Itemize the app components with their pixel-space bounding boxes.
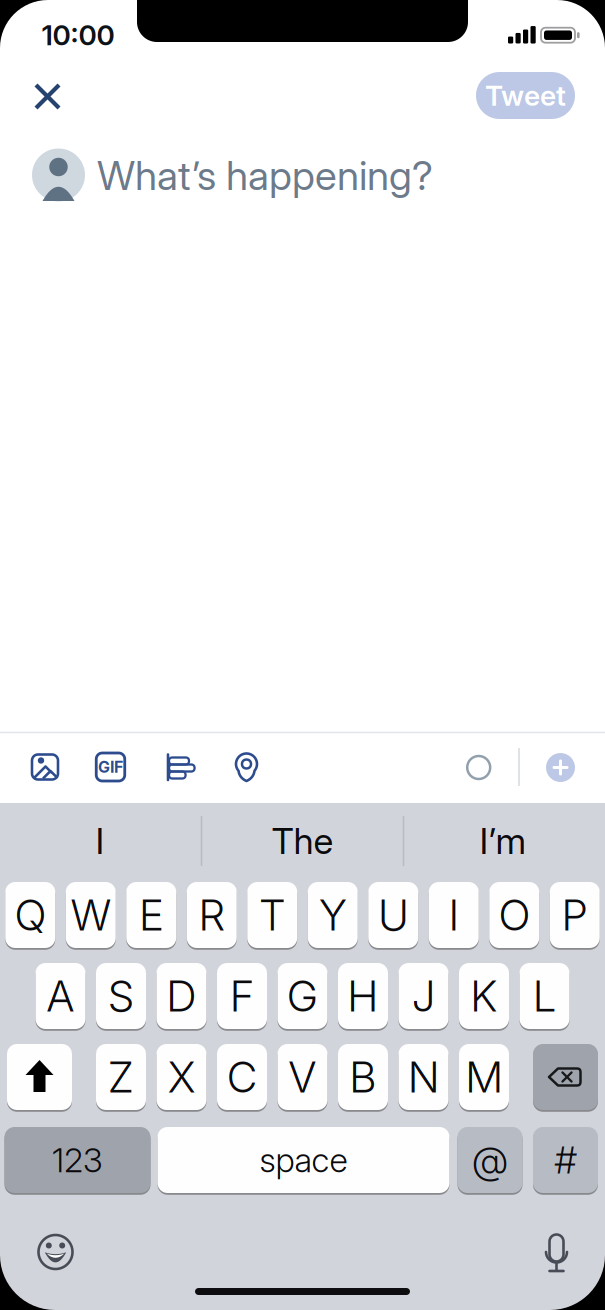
button[interactable]: L — [519, 962, 569, 1030]
staticText: space — [259, 1140, 347, 1180]
staticText: Tweet — [485, 79, 566, 112]
staticText: B — [349, 1052, 377, 1102]
staticText: Q — [14, 890, 46, 940]
staticText: L — [532, 971, 556, 1021]
staticText: Y — [319, 890, 347, 940]
button[interactable]: S — [96, 962, 146, 1030]
button[interactable]: I — [5, 806, 195, 876]
staticText: U — [378, 890, 409, 940]
button[interactable]: E — [126, 881, 176, 949]
button[interactable]: Y — [308, 881, 358, 949]
button[interactable]: I’m — [408, 806, 598, 876]
button[interactable]: space — [157, 1126, 449, 1194]
staticText: C — [226, 1052, 257, 1102]
button[interactable]: K — [459, 962, 509, 1030]
button[interactable]: Add GIF — [88, 745, 132, 789]
button[interactable]: Add another Tweet — [538, 745, 582, 789]
button[interactable]: P — [550, 881, 600, 949]
button[interactable]: X — [156, 1043, 206, 1111]
staticText: E — [139, 890, 164, 940]
staticText: N — [407, 1052, 439, 1102]
staticText: Z — [107, 1052, 134, 1102]
staticText: F — [229, 971, 254, 1021]
staticText: P — [561, 890, 588, 940]
button[interactable]: T — [247, 881, 297, 949]
staticText: K — [470, 971, 498, 1021]
button[interactable]: Delete — [533, 1043, 598, 1111]
button[interactable]: @ — [457, 1126, 522, 1194]
button[interactable]: # — [533, 1126, 598, 1194]
staticText: @ — [472, 1138, 508, 1182]
button[interactable]: Z — [96, 1043, 146, 1111]
staticText: 10:00 — [41, 18, 114, 51]
staticText: I’m — [479, 820, 526, 862]
button[interactable]: I — [429, 881, 479, 949]
staticText: M — [465, 1052, 503, 1102]
staticText: T — [259, 890, 286, 940]
staticText: A — [46, 971, 75, 1021]
staticText: # — [554, 1138, 576, 1182]
staticText: GIF — [98, 758, 123, 776]
button[interactable]: G — [277, 962, 327, 1030]
button[interactable]: O — [489, 881, 539, 949]
button[interactable]: W — [66, 881, 116, 949]
button[interactable]: Close — [23, 72, 71, 120]
button[interactable]: Emoji — [33, 1230, 77, 1274]
staticText: 123 — [52, 1140, 103, 1180]
button[interactable]: V — [277, 1043, 327, 1111]
button[interactable]: J — [398, 962, 448, 1030]
staticText: R — [198, 890, 225, 940]
button[interactable]: R — [187, 881, 237, 949]
staticText: D — [166, 971, 197, 1021]
staticText: X — [167, 1052, 195, 1102]
staticText: I — [448, 890, 459, 940]
staticText: I — [95, 820, 104, 862]
button[interactable]: C — [217, 1043, 267, 1111]
button[interactable]: Tweet — [476, 72, 575, 119]
button[interactable]: D — [156, 962, 206, 1030]
button[interactable]: Add location — [224, 745, 268, 789]
button[interactable]: N — [398, 1043, 448, 1111]
button[interactable]: 123 — [4, 1126, 150, 1194]
button[interactable]: F — [217, 962, 267, 1030]
button[interactable]: U — [368, 881, 418, 949]
button[interactable]: H — [338, 962, 388, 1030]
staticText: G — [286, 971, 318, 1021]
button[interactable]: Add photo — [23, 745, 67, 789]
staticText: S — [107, 971, 134, 1021]
staticText: W — [70, 890, 111, 940]
staticText: H — [347, 971, 379, 1021]
button[interactable]: M — [459, 1043, 509, 1111]
staticText: J — [411, 971, 435, 1021]
staticText: V — [288, 1052, 317, 1102]
button[interactable]: The — [207, 806, 397, 876]
button[interactable]: B — [338, 1043, 388, 1111]
button[interactable]: A — [35, 962, 85, 1030]
staticText: O — [498, 890, 530, 940]
staticText: The — [271, 820, 333, 862]
button[interactable]: Q — [5, 881, 55, 949]
button[interactable]: Dictation — [534, 1230, 578, 1274]
button[interactable]: Shift — [7, 1043, 72, 1111]
staticText: What’s happening? — [97, 152, 433, 199]
button[interactable]: Add poll — [159, 745, 203, 789]
